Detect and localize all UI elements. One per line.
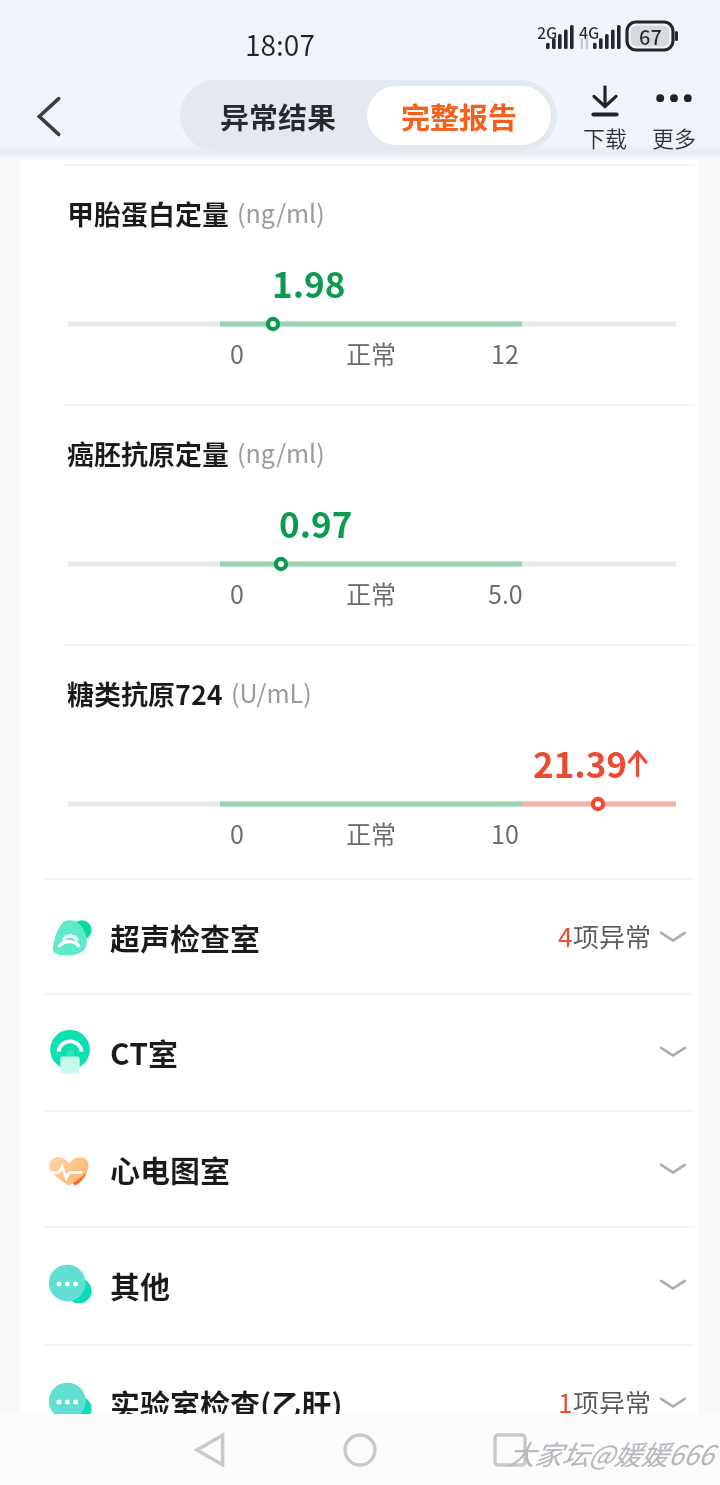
staticText: 心电图室 (110, 1147, 230, 1190)
staticText: 0.97 (279, 497, 353, 548)
staticText: 4G (579, 20, 600, 43)
staticText: 项异常 (573, 1383, 652, 1421)
staticText: 4 (558, 917, 573, 955)
button[interactable]: More options (638, 82, 710, 156)
button[interactable]: 实验室检查(乙肝) (20, 1344, 698, 1460)
staticText: 其他 (110, 1263, 170, 1306)
button[interactable]: 完整报告 (367, 86, 551, 145)
staticText: 正常 (346, 815, 397, 849)
staticText: 项异常 (573, 917, 652, 955)
staticText: 1 (558, 1383, 573, 1421)
button[interactable]: 异常结果 (186, 86, 370, 145)
staticText: 0 (230, 815, 244, 849)
staticText: 甲胎蛋白定量 (67, 194, 229, 233)
button[interactable]: Home (320, 1414, 400, 1485)
staticText: 5.0 (488, 575, 523, 609)
button[interactable]: 超声检查室 (20, 878, 698, 994)
button[interactable]: 心电图室 (20, 1110, 698, 1226)
staticText: 21.39 (533, 737, 627, 788)
staticText: 完整报告 (401, 95, 518, 137)
staticText: 异常结果 (220, 95, 337, 137)
staticText: 大家坛@媛媛666 (507, 1434, 713, 1473)
staticText: 实验室检查(乙肝) (110, 1381, 343, 1424)
staticText: 下载 (583, 121, 628, 153)
button[interactable]: Recent apps (470, 1414, 550, 1485)
staticText: 18:07 (245, 24, 315, 56)
staticText: 67 (639, 22, 662, 50)
staticText: (ng/ml) (237, 194, 325, 230)
staticText: 12 (491, 335, 519, 369)
staticText: (ng/ml) (237, 434, 325, 470)
staticText: 癌胚抗原定量 (67, 434, 229, 473)
staticText: 糖类抗原724 (67, 674, 223, 713)
button[interactable]: Back (20, 87, 78, 145)
staticText: CT室 (110, 1030, 178, 1073)
staticText: 0 (230, 335, 244, 369)
staticText: 正常 (346, 335, 397, 369)
button[interactable]: Download (569, 82, 641, 156)
staticText: 更多 (652, 121, 697, 153)
staticText: 超声检查室 (110, 915, 260, 958)
button[interactable]: 其他 (20, 1226, 698, 1342)
button[interactable]: CT室 (20, 993, 698, 1109)
staticText: 1.98 (272, 257, 346, 308)
staticText: 正常 (346, 575, 397, 609)
staticText: 10 (491, 815, 519, 849)
staticText: 0 (230, 575, 244, 609)
button[interactable]: Back (170, 1414, 250, 1485)
staticText: 2G (537, 20, 558, 43)
staticText: (U/mL) (231, 674, 312, 710)
